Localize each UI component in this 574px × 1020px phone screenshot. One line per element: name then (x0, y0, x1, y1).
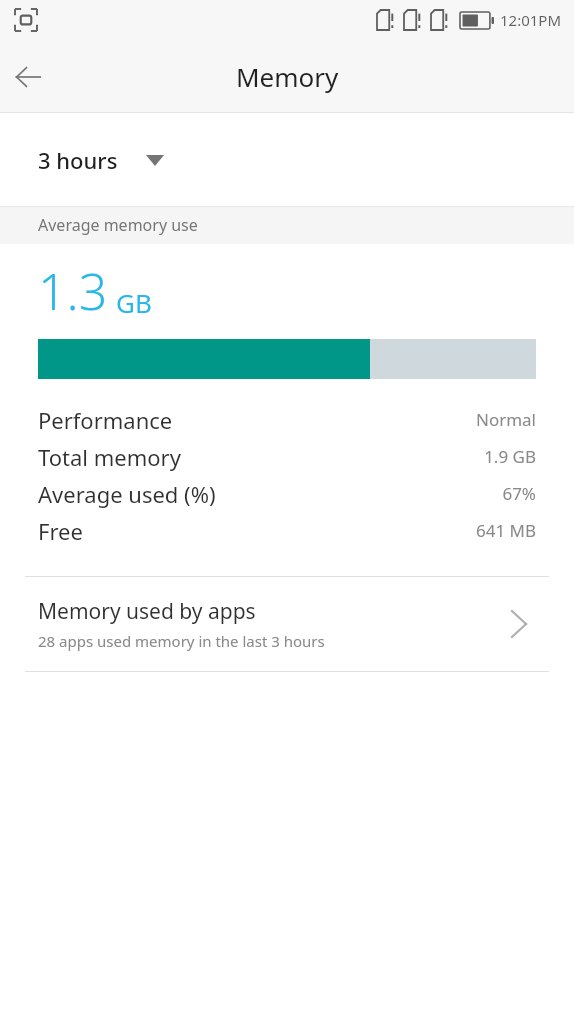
staticText: Normal (475, 408, 536, 431)
button[interactable]: Memory used by apps (0, 577, 574, 671)
staticText: Memory (236, 59, 339, 94)
button[interactable]: Free (0, 512, 574, 549)
button[interactable]: 3 hours (38, 145, 164, 175)
staticText: Free (38, 516, 83, 546)
staticText: 3 hours (38, 145, 118, 175)
staticText: Average memory use (38, 214, 198, 236)
staticText: Performance (38, 405, 173, 435)
staticText: Average used (%) (38, 479, 216, 509)
staticText: 12:01PM (500, 10, 562, 30)
staticText: 28 apps used memory in the last 3 hours (38, 631, 325, 651)
button[interactable]: Performance (0, 401, 574, 438)
button[interactable]: Average used (%) (0, 475, 574, 512)
staticText: Total memory (38, 442, 181, 472)
staticText: 641 MB (475, 519, 536, 542)
staticText: Memory used by apps (38, 597, 256, 626)
staticText: 67% (502, 482, 536, 505)
staticText: 1.3 (38, 257, 108, 325)
staticText: 1.9 GB (484, 445, 536, 468)
button[interactable]: Total memory (0, 438, 574, 475)
button[interactable]: Back (0, 49, 56, 105)
staticText: GB (116, 285, 152, 320)
